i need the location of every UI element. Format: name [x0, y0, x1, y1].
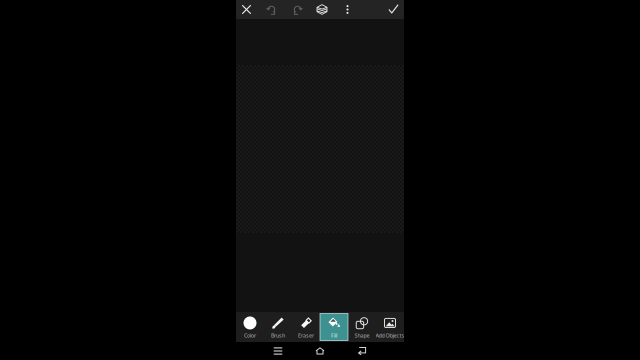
button[interactable]: Back: [348, 342, 376, 360]
staticText: Brush: [271, 332, 285, 339]
staticText: Fill: [331, 332, 337, 339]
staticText: Add Objects: [375, 332, 404, 339]
button[interactable]: Home: [306, 342, 334, 360]
button[interactable]: Layers: [311, 0, 332, 19]
button[interactable]: Eraser: [292, 312, 320, 342]
button[interactable]: Undo: [261, 0, 282, 19]
button[interactable]: More options: [337, 0, 358, 19]
button[interactable]: Recent apps: [264, 342, 292, 360]
button[interactable]: Apply: [383, 0, 404, 19]
button[interactable]: Add Objects: [376, 312, 404, 342]
button[interactable]: Redo: [286, 0, 307, 19]
button[interactable]: Fill: [320, 312, 348, 342]
staticText: Shape: [354, 332, 369, 339]
button[interactable]: Brush: [264, 312, 292, 342]
button[interactable]: Close: [236, 0, 257, 19]
staticText: Color: [244, 332, 256, 339]
button[interactable]: Color: [236, 312, 264, 342]
button[interactable]: Shape: [348, 312, 376, 342]
staticText: Eraser: [298, 332, 314, 339]
